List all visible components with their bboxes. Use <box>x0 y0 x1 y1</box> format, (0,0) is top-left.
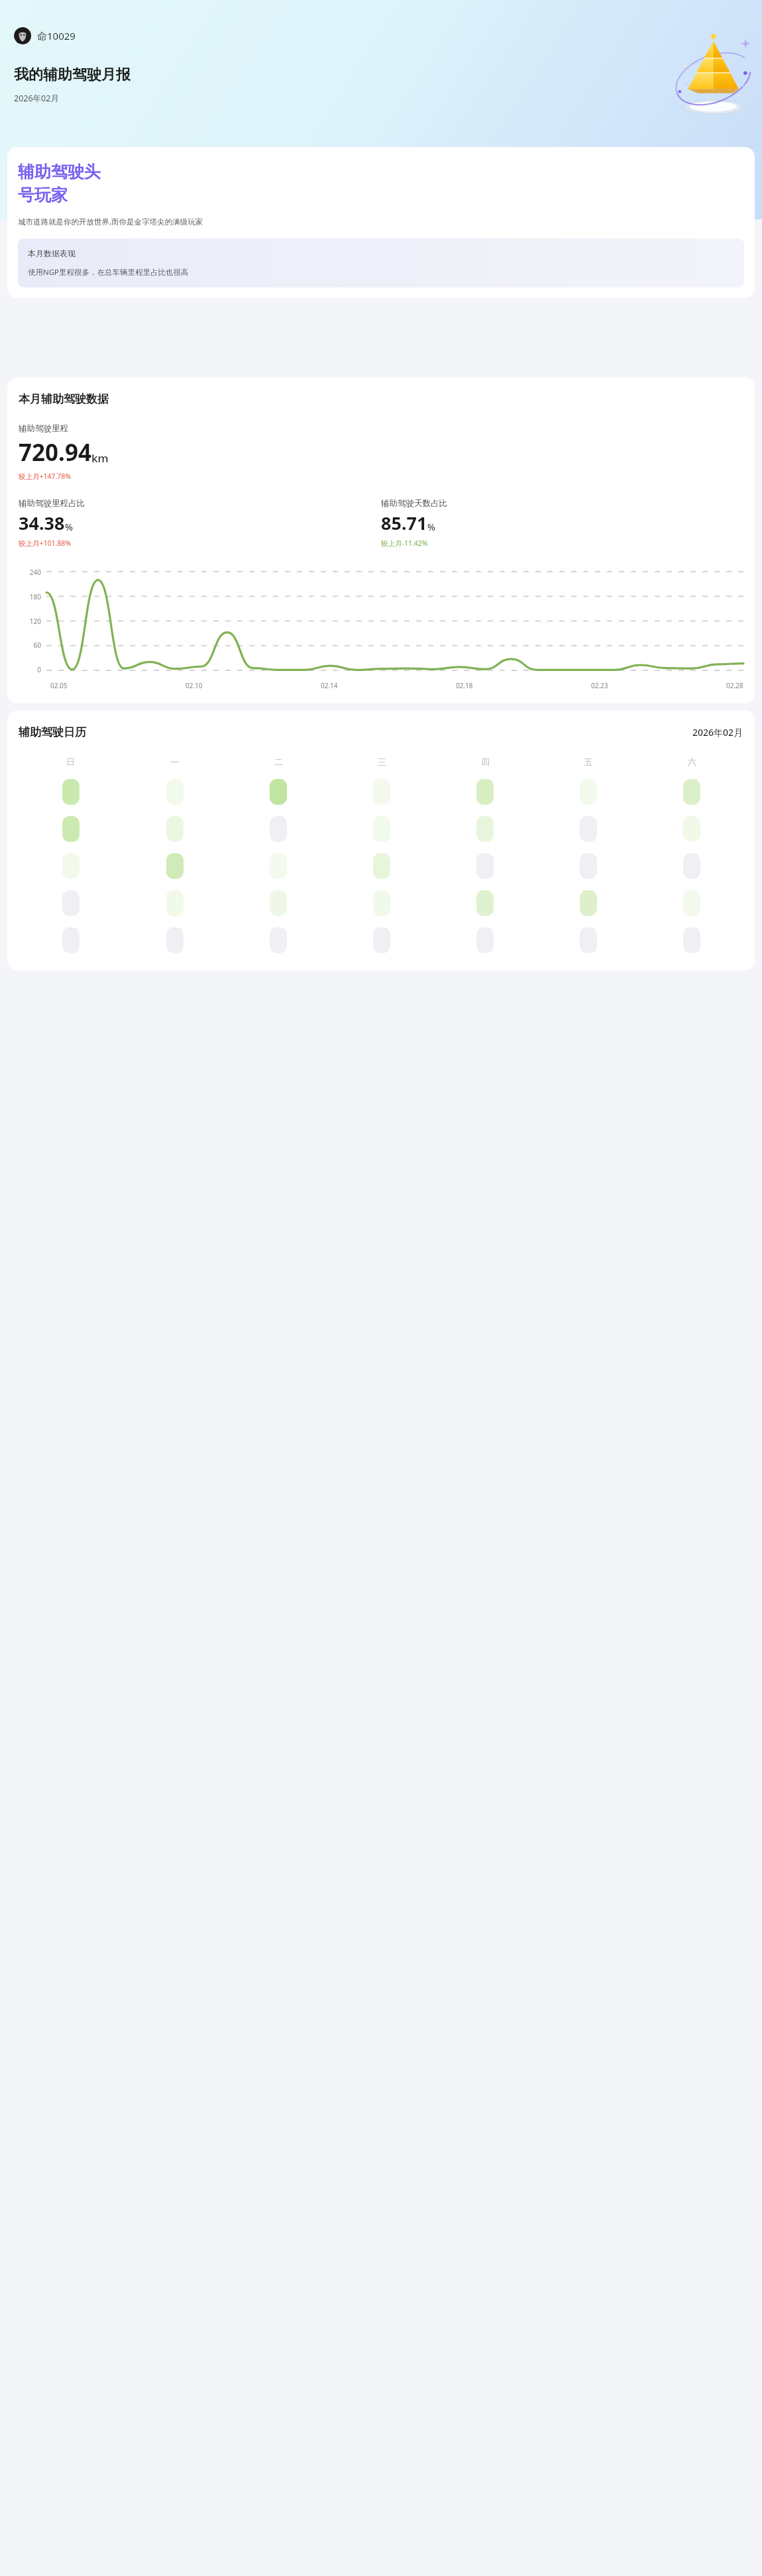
staticText: 本月数据表现 <box>28 248 76 258</box>
button[interactable] <box>270 816 287 842</box>
staticText: 日 <box>66 756 75 767</box>
button[interactable] <box>683 890 700 916</box>
staticText: 120 <box>29 617 41 626</box>
staticText: 四 <box>481 756 490 767</box>
button[interactable] <box>166 853 184 879</box>
staticText: 02.23 <box>591 681 608 690</box>
button[interactable]: 本月辅助驾驶数据 <box>7 378 755 703</box>
staticText: 2026年02月 <box>14 93 59 104</box>
button[interactable] <box>683 853 700 879</box>
button[interactable] <box>270 890 287 916</box>
button[interactable] <box>683 779 700 805</box>
staticText: 60 <box>33 641 41 650</box>
button[interactable]: 辅助驾驶头 <box>7 147 755 298</box>
staticText: 城市道路就是你的开放世界,而你是金字塔尖的满级玩家 <box>18 217 203 227</box>
button[interactable] <box>62 853 80 879</box>
button[interactable] <box>476 927 494 953</box>
staticText: 较上月-11.42% <box>381 539 428 548</box>
button[interactable] <box>683 927 700 953</box>
staticText: 02.10 <box>186 681 203 690</box>
staticText: 二 <box>274 756 283 767</box>
staticText: 三 <box>378 756 386 767</box>
button[interactable] <box>270 853 287 879</box>
button[interactable] <box>373 853 390 879</box>
staticText: 辅助驾驶天数占比 <box>381 498 447 509</box>
staticText: 五 <box>584 756 593 767</box>
staticText: 2026年02月 <box>692 726 743 739</box>
button[interactable] <box>373 927 390 953</box>
staticText: 720.94 <box>19 437 91 468</box>
button[interactable]: 辅助驾驶日历 <box>7 711 755 970</box>
button[interactable] <box>476 779 494 805</box>
button[interactable] <box>166 890 184 916</box>
staticText: % <box>427 521 435 533</box>
staticText: 240 <box>29 568 41 577</box>
staticText: 使用NGP里程很多，在总车辆里程里占比也很高 <box>28 267 189 278</box>
button[interactable] <box>62 816 80 842</box>
staticText: 较上月+101.88% <box>19 539 72 548</box>
staticText: 辅助驾驶日历 <box>19 725 86 739</box>
button[interactable] <box>166 816 184 842</box>
staticText: % <box>65 521 73 533</box>
staticText: 02.14 <box>321 681 338 690</box>
button[interactable]: 命10029 <box>14 27 81 44</box>
button[interactable] <box>166 779 184 805</box>
button[interactable] <box>580 853 597 879</box>
staticText: 180 <box>29 592 41 601</box>
button[interactable] <box>580 890 597 916</box>
button[interactable] <box>373 890 390 916</box>
staticText: 号玩家 <box>18 185 68 205</box>
button[interactable] <box>270 779 287 805</box>
button[interactable] <box>373 779 390 805</box>
staticText: 34.38 <box>19 511 65 535</box>
button[interactable] <box>166 927 184 953</box>
button[interactable] <box>580 816 597 842</box>
staticText: 我的辅助驾驶月报 <box>14 66 131 84</box>
button[interactable] <box>476 853 494 879</box>
button[interactable] <box>270 927 287 953</box>
button[interactable] <box>62 927 80 953</box>
staticText: 六 <box>688 756 696 767</box>
staticText: 辅助驾驶头 <box>18 162 101 182</box>
button[interactable] <box>476 816 494 842</box>
button[interactable] <box>373 816 390 842</box>
button[interactable] <box>62 890 80 916</box>
staticText: 较上月+147.78% <box>19 472 72 481</box>
button[interactable] <box>580 927 597 953</box>
staticText: 85.71 <box>381 511 427 535</box>
staticText: 辅助驾驶里程 <box>19 423 68 434</box>
staticText: 辅助驾驶里程占比 <box>19 498 85 509</box>
staticText: 本月辅助驾驶数据 <box>19 392 109 406</box>
button[interactable] <box>580 779 597 805</box>
staticText: 命10029 <box>37 29 76 42</box>
button[interactable] <box>683 816 700 842</box>
button[interactable] <box>62 779 80 805</box>
button[interactable]: 辅助驾驶天数占比 <box>381 498 743 548</box>
staticText: 02.18 <box>456 681 473 690</box>
staticText: 0 <box>37 665 41 674</box>
button[interactable] <box>476 890 494 916</box>
staticText: 一 <box>170 756 179 767</box>
staticText: km <box>91 450 109 466</box>
button[interactable]: 辅助驾驶里程占比 <box>19 498 381 548</box>
staticText: 02.05 <box>50 681 68 690</box>
staticText: 02.28 <box>726 681 743 690</box>
